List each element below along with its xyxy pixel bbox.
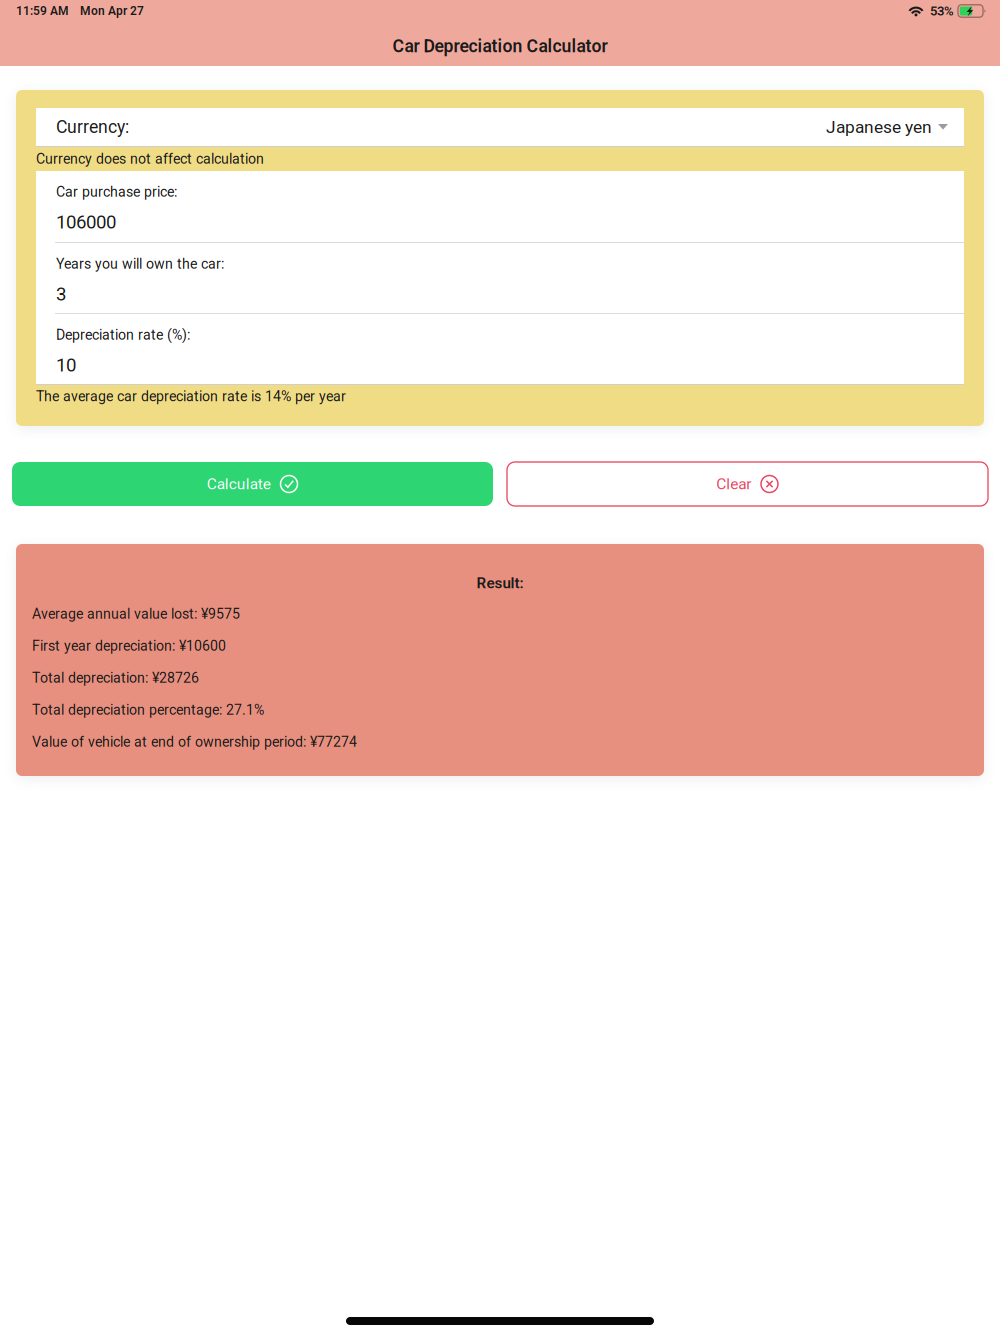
button[interactable]: Clear (507, 462, 988, 506)
staticText: Total depreciation percentage: 27.1% (32, 702, 264, 718)
staticText: Calculate (207, 475, 271, 493)
staticText: The average car depreciation rate is 14%… (36, 388, 346, 405)
staticText: 106000 (56, 211, 116, 233)
staticText: Mon Apr 27 (80, 4, 144, 18)
staticText: Average annual value lost: ¥9575 (32, 606, 240, 622)
staticText: 10 (56, 354, 76, 376)
staticText: First year depreciation: ¥10600 (32, 638, 226, 654)
staticText: 11:59 AM (16, 4, 69, 18)
staticText: Currency does not affect calculation (36, 151, 264, 167)
staticText: Depreciation rate (%): (56, 327, 190, 343)
staticText: Years you will own the car: (56, 256, 224, 272)
staticText: Clear (716, 475, 751, 493)
staticText: Total depreciation: ¥28726 (32, 670, 199, 686)
staticText: Car Depreciation Calculator (392, 36, 607, 57)
staticText: Value of vehicle at end of ownership per… (32, 734, 357, 750)
button[interactable]: Calculate (12, 462, 493, 506)
staticText: 3 (56, 283, 66, 305)
staticText: Currency: (56, 117, 129, 137)
staticText: Result: (476, 574, 523, 592)
staticText: 53% (930, 3, 954, 19)
staticText: Japanese yen (826, 117, 932, 137)
staticText: Car purchase price: (56, 184, 177, 200)
